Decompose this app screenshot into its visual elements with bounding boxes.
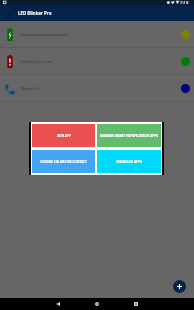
button[interactable]: STANDARD APPS — [97, 150, 161, 173]
staticText: Battery status low — [21, 59, 52, 64]
staticText: Missed call — [21, 86, 40, 91]
staticText: Battery charging completed — [21, 32, 69, 37]
staticText: 7:18 — [180, 0, 189, 5]
staticText: STANDARD APPS — [116, 160, 142, 164]
button[interactable]: MANAGE SMART NOTIFICATION APPS — [97, 124, 161, 147]
button[interactable]: Battery charging completed — [0, 21, 194, 47]
staticText: ADD APP — [57, 134, 71, 138]
button[interactable]: Open navigation drawer — [0, 5, 18, 21]
button[interactable]: Missed call — [0, 75, 194, 101]
button[interactable]: ADD APP — [32, 124, 95, 147]
staticText: MANAGE SMART NOTIFICATION APPS — [100, 134, 158, 138]
staticText: CHOOSE COLOR FOR CONTACT — [40, 160, 87, 164]
button[interactable]: Recent apps — [126, 298, 146, 310]
button[interactable]: Battery status low — [0, 48, 194, 74]
button[interactable]: Add — [173, 280, 186, 293]
button[interactable]: Home — [87, 298, 107, 310]
button[interactable]: CHOOSE COLOR FOR CONTACT — [32, 150, 95, 173]
staticText: LED Blinker Pro — [18, 10, 52, 16]
button[interactable]: Back — [48, 298, 68, 310]
